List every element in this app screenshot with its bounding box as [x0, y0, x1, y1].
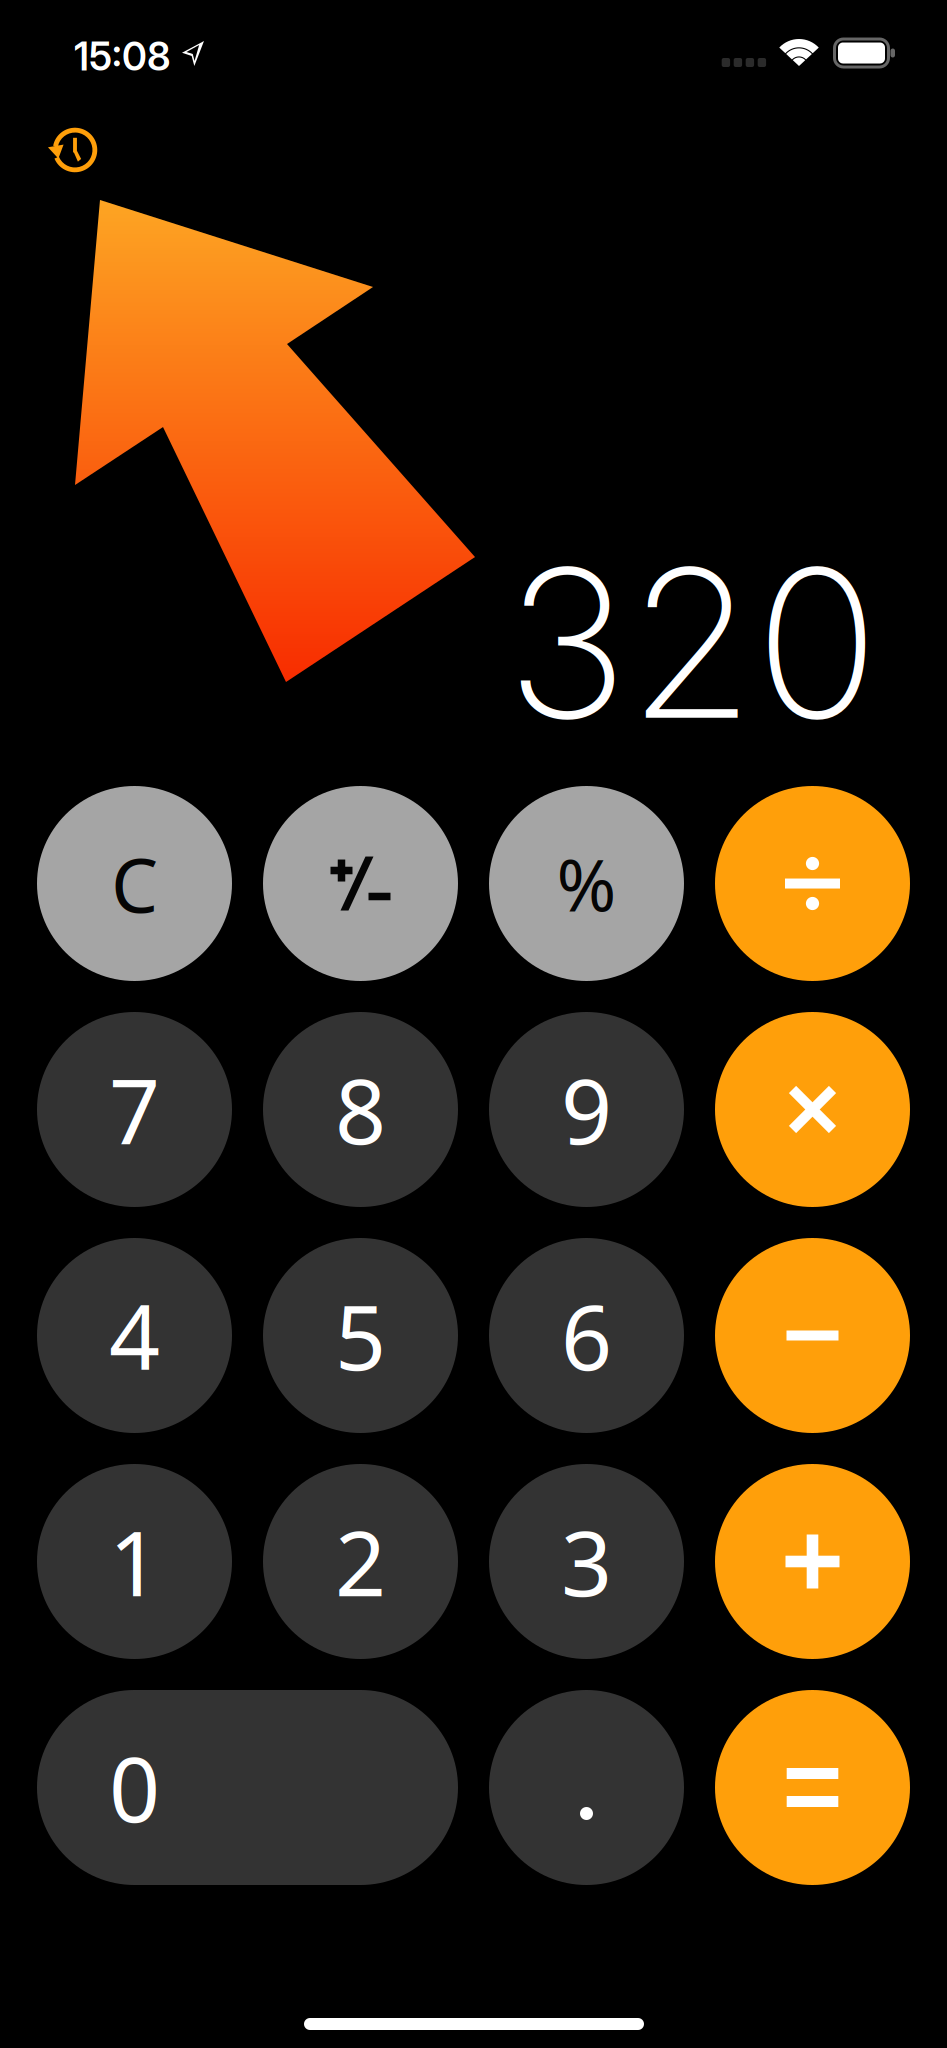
button[interactable]: 7: [37, 1012, 232, 1207]
staticText: 3: [561, 1502, 612, 1621]
staticText: 6: [561, 1276, 612, 1395]
button[interactable]: 4: [37, 1238, 232, 1433]
button[interactable]: 6: [489, 1238, 684, 1433]
staticText: 4: [109, 1276, 160, 1395]
button[interactable]: 1: [37, 1464, 232, 1659]
button[interactable]: 2: [263, 1464, 458, 1659]
staticText: %: [556, 836, 616, 931]
staticText: 1: [109, 1502, 160, 1621]
button[interactable]: 9: [489, 1012, 684, 1207]
staticText: 0: [109, 1728, 160, 1847]
button[interactable]: 8: [263, 1012, 458, 1207]
button[interactable]: 5: [263, 1238, 458, 1433]
button[interactable]: Divide: [715, 786, 910, 981]
staticText: 15:08: [74, 33, 171, 80]
button[interactable]: %: [489, 786, 684, 981]
staticText: 2: [335, 1502, 386, 1621]
staticText: C: [111, 834, 158, 933]
button[interactable]: 3: [489, 1464, 684, 1659]
button[interactable]: C: [37, 786, 232, 981]
button[interactable]: Toggle sign: [263, 786, 458, 981]
button[interactable]: Equals: [715, 1690, 910, 1885]
button[interactable]: Decimal point: [489, 1690, 684, 1885]
button[interactable]: Add: [715, 1464, 910, 1659]
staticText: 9: [561, 1050, 612, 1169]
staticText: 8: [335, 1050, 386, 1169]
staticText: 7: [109, 1050, 160, 1169]
button[interactable]: Multiply: [715, 1012, 910, 1207]
button[interactable]: 0: [37, 1690, 458, 1885]
staticText: 5: [335, 1276, 386, 1395]
button[interactable]: History: [27, 102, 123, 198]
button[interactable]: Subtract: [715, 1238, 910, 1433]
staticText: 320: [506, 519, 879, 767]
